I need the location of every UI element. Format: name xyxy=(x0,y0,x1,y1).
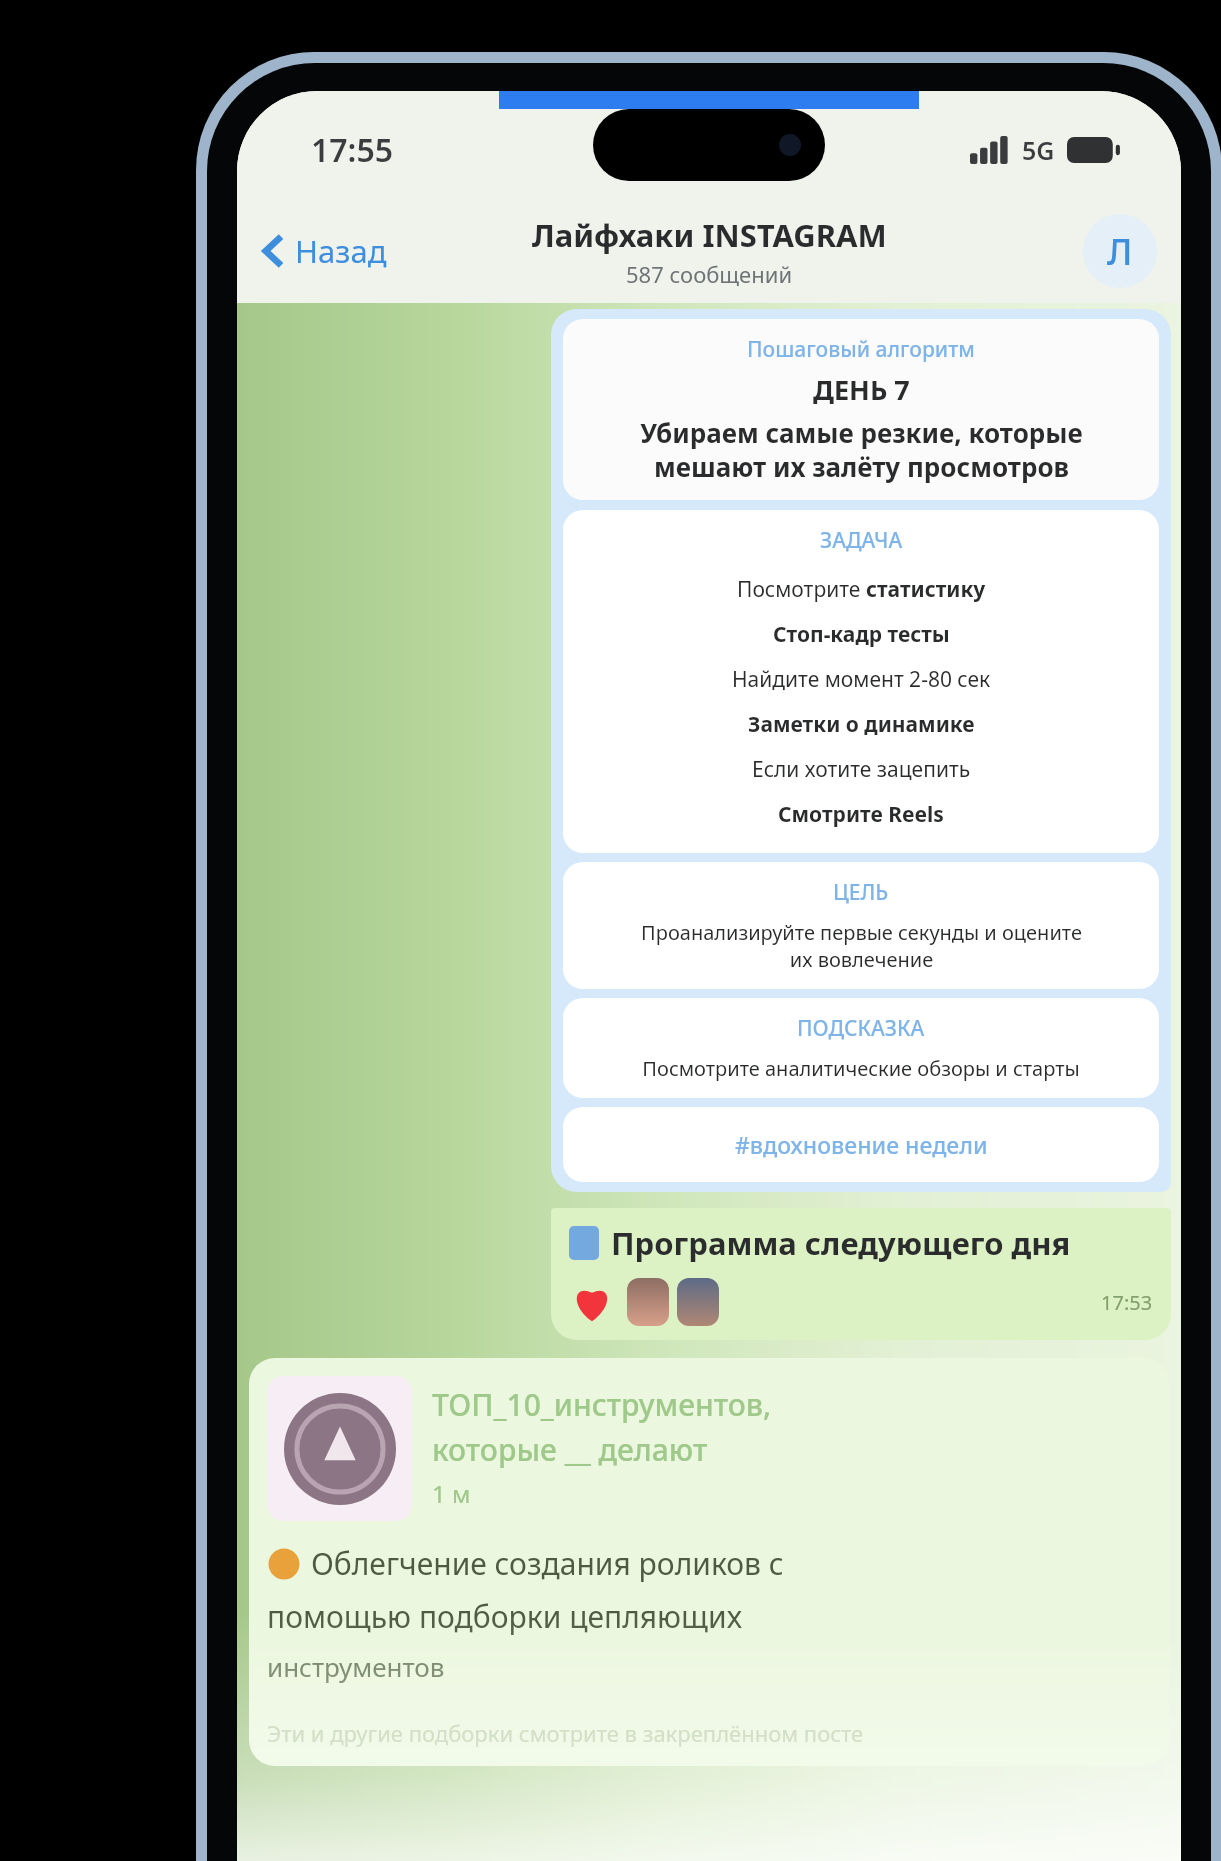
button[interactable]: ЗАДАЧА xyxy=(563,510,1159,853)
staticText: Посмотрите аналитические обзоры и старты xyxy=(581,1055,1141,1082)
button[interactable]: ЦЕЛЬ xyxy=(563,862,1159,989)
staticText: #вдохновение недели xyxy=(735,1129,988,1160)
staticText: помощью подборки цепляющих xyxy=(267,1596,742,1637)
staticText: Если хотите зацепить xyxy=(752,755,971,784)
staticText: Смотрите Reels xyxy=(778,800,944,829)
staticText: 17:55 xyxy=(311,128,394,172)
staticText: Стоп-кадр тесты xyxy=(773,620,950,649)
staticText: статистику xyxy=(866,575,986,604)
staticText: 5G xyxy=(1022,133,1055,167)
button[interactable]: Открыть профиль чата xyxy=(1083,214,1157,288)
staticText: Пошаговый алгоритм xyxy=(747,335,975,364)
staticText: Убираем самые резкие, которые мешают их … xyxy=(640,415,1083,484)
staticText: ТОП_10_инструментов, которые __ делают xyxy=(432,1384,772,1469)
staticText: Посмотрите xyxy=(737,575,866,604)
staticText: 587 сообщений xyxy=(626,259,793,289)
staticText: 1 м xyxy=(432,1477,471,1510)
staticText: инструментов xyxy=(267,1649,445,1684)
staticText: ЦЕЛЬ xyxy=(833,878,889,907)
staticText: Назад xyxy=(295,230,387,272)
staticText: 17:53 xyxy=(1101,1289,1153,1316)
button[interactable]: Назад xyxy=(255,222,395,280)
staticText: Облегчение создания роликов с xyxy=(311,1543,784,1584)
staticText: Эти и другие подборки смотрите в закрепл… xyxy=(267,1718,864,1748)
button[interactable]: Пошаговый алгоритм xyxy=(551,309,1171,1192)
button[interactable]: #вдохновение недели xyxy=(563,1107,1159,1182)
staticText: Проанализируйте первые секунды и оцените… xyxy=(641,919,1082,973)
staticText: Программа следующего дня xyxy=(611,1222,1071,1264)
staticText: Лайфхаки INSTAGRAM xyxy=(532,214,887,256)
staticText: Заметки о динамике xyxy=(748,710,975,739)
staticText: ЗАДАЧА xyxy=(820,526,903,555)
staticText: Л xyxy=(1107,227,1133,276)
staticText: ПОДСКАЗКА xyxy=(797,1014,925,1043)
staticText: ДЕНЬ 7 xyxy=(813,371,910,408)
button[interactable]: ТОП_10_инструментов, которые __ делают xyxy=(249,1358,1169,1766)
staticText: Найдите момент 2-80 сек xyxy=(732,665,991,694)
button[interactable]: ПОДСКАЗКА xyxy=(563,998,1159,1098)
button[interactable]: Программа следующего дня xyxy=(551,1208,1171,1340)
